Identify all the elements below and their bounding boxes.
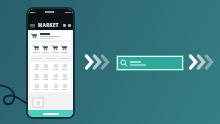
button[interactable]: [43, 74, 48, 80]
button[interactable]: Next step: [86, 52, 110, 72]
button[interactable]: Menu: [28, 9, 73, 117]
button[interactable]: [52, 44, 59, 53]
button[interactable]: [33, 98, 43, 107]
button[interactable]: [43, 113, 59, 115]
button[interactable]: [42, 44, 49, 53]
staticText: MARKET: [38, 22, 59, 28]
other: Search: [120, 59, 128, 67]
button[interactable]: [43, 84, 48, 90]
button[interactable]: [34, 84, 39, 90]
button[interactable]: [62, 64, 67, 70]
button[interactable]: [43, 64, 48, 70]
button[interactable]: [34, 74, 39, 80]
button[interactable]: [34, 64, 39, 70]
button[interactable]: [33, 44, 40, 53]
button[interactable]: [53, 84, 58, 90]
button[interactable]: [62, 84, 67, 90]
button[interactable]: [53, 74, 58, 80]
button[interactable]: Next step: [190, 52, 214, 72]
button[interactable]: [53, 64, 58, 70]
button[interactable]: Action: [68, 24, 71, 27]
button[interactable]: Search: [117, 56, 183, 70]
button[interactable]: [62, 74, 67, 80]
button[interactable]: [61, 44, 68, 53]
button[interactable]: Menu: [30, 23, 35, 28]
button[interactable]: [31, 32, 70, 39]
button[interactable]: Action: [63, 24, 66, 27]
